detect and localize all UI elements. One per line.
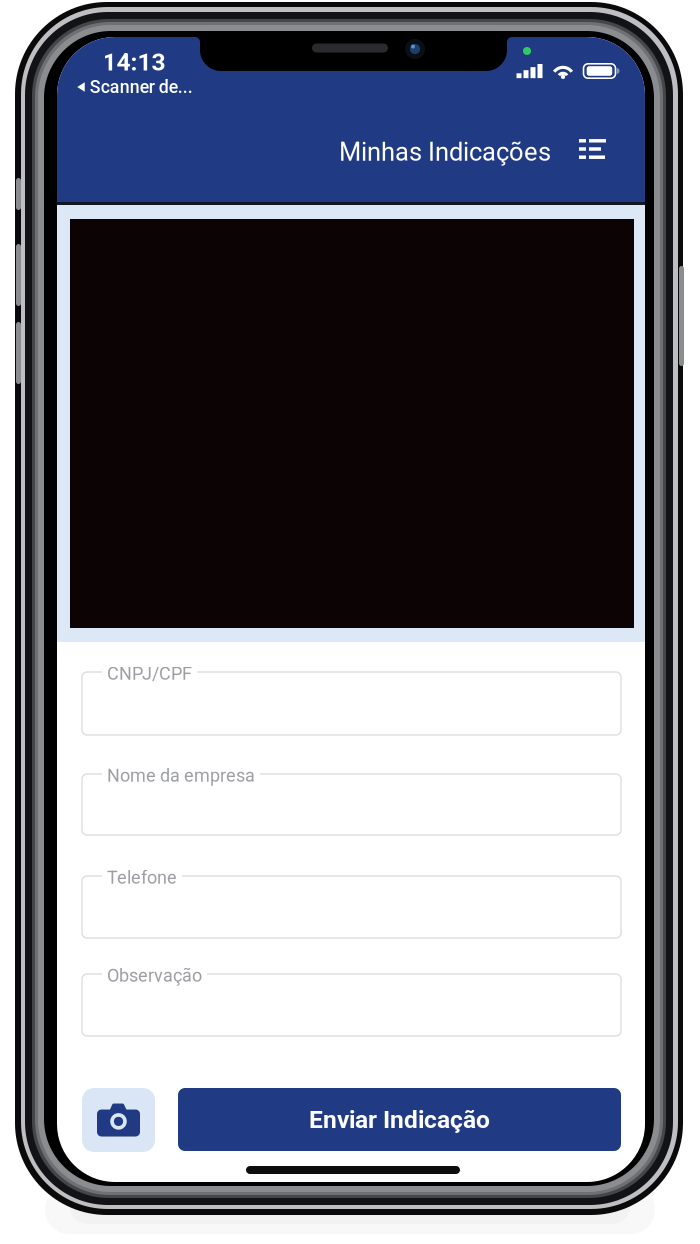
button[interactable]: Minhas Indicações <box>331 130 559 174</box>
staticText: CNPJ/CPF <box>107 663 192 684</box>
staticText: Enviar Indicação <box>309 1105 490 1134</box>
button[interactable]: Enviar Indicação <box>178 1088 621 1151</box>
button[interactable]: My referrals <box>570 127 614 171</box>
button[interactable]: Nome da empresa <box>82 774 621 835</box>
staticText: 14:13 <box>102 48 165 76</box>
button[interactable]: CNPJ/CPF <box>82 672 621 735</box>
staticText: Telefone <box>107 867 177 888</box>
staticText: Minhas Indicações <box>339 137 551 167</box>
staticText: Scanner de... <box>90 77 193 97</box>
staticText: Observação <box>107 965 202 986</box>
button[interactable]: Take photo <box>82 1088 155 1152</box>
button[interactable]: Telefone <box>82 876 621 938</box>
button[interactable]: Observação <box>82 974 621 1036</box>
staticText: Nome da empresa <box>107 765 255 786</box>
